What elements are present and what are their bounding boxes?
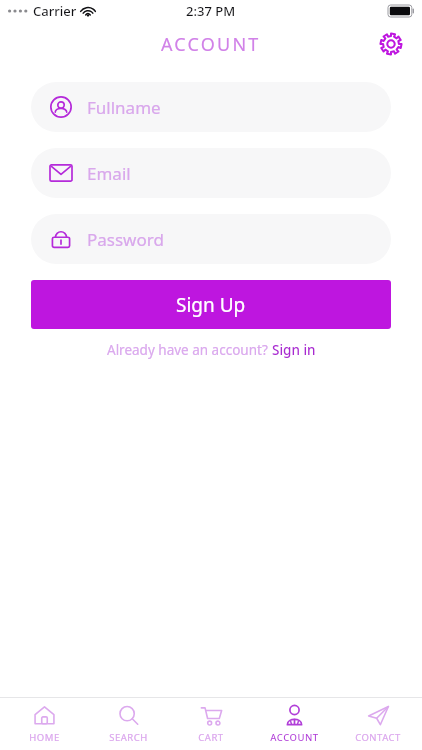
button[interactable]: Password (31, 214, 391, 264)
staticText: Fullname (87, 96, 161, 119)
staticText: Sign Up (176, 292, 246, 318)
staticText: CONTACT (355, 731, 401, 744)
button[interactable]: SEARCH (89, 700, 167, 748)
staticText: Password (87, 228, 164, 251)
button[interactable]: CONTACT (339, 700, 417, 748)
staticText: 2:37 PM (186, 2, 236, 20)
button[interactable]: ACCOUNT (255, 700, 333, 748)
staticText: Sign in (272, 341, 316, 359)
staticText: SEARCH (109, 731, 148, 744)
staticText: ACCOUNT (161, 32, 261, 57)
staticText: ACCOUNT (270, 731, 319, 744)
staticText: HOME (29, 731, 60, 744)
button[interactable]: HOME (5, 700, 83, 748)
staticText: Carrier (33, 2, 77, 20)
button[interactable]: Settings (374, 27, 408, 61)
button[interactable]: CART (172, 700, 250, 748)
button[interactable]: Sign in (272, 341, 316, 359)
button[interactable]: Fullname (31, 82, 391, 132)
button[interactable]: Email (31, 148, 391, 198)
staticText: Already have an account? (107, 341, 272, 359)
staticText: Email (87, 162, 131, 185)
staticText: CART (198, 731, 224, 744)
button[interactable]: Sign Up (31, 280, 391, 329)
